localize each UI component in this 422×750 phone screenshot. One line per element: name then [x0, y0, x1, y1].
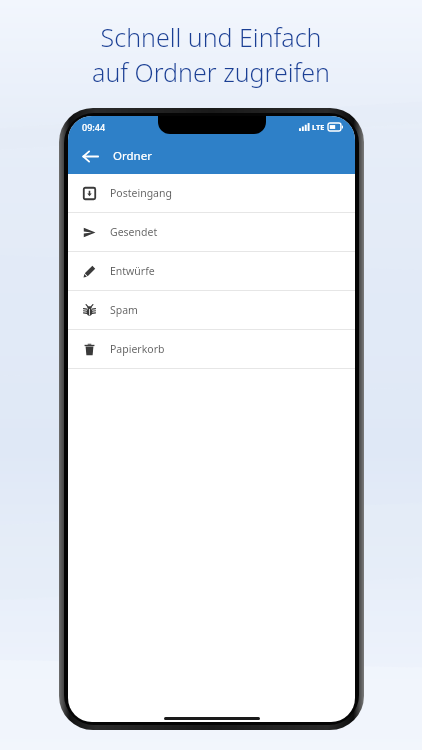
staticText: Spam [110, 303, 138, 317]
button[interactable]: Papierkorb [68, 330, 355, 369]
staticText: Schnell und Einfach auf Ordner zugreifen [14, 20, 408, 90]
staticText: Ordner [113, 148, 152, 164]
button[interactable]: Entwürfe [68, 252, 355, 291]
staticText: Papierkorb [110, 342, 165, 356]
staticText: Gesendet [110, 225, 158, 239]
button[interactable]: Gesendet [68, 213, 355, 252]
staticText: Entwürfe [110, 264, 155, 278]
button[interactable]: Back [76, 142, 104, 170]
staticText: Posteingang [110, 186, 172, 200]
staticText: LTE [312, 122, 325, 132]
staticText: 09:44 [82, 121, 106, 133]
button[interactable]: Spam [68, 291, 355, 330]
button[interactable]: Posteingang [68, 174, 355, 213]
